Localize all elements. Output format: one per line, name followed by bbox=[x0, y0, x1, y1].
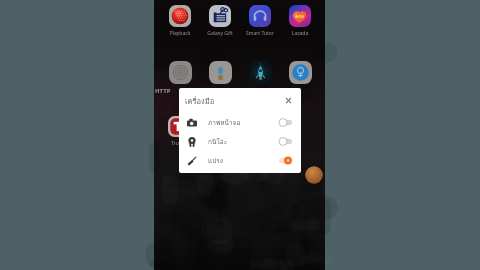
staticText: Galaxy Gift bbox=[199, 30, 241, 37]
staticText: Lazada bbox=[279, 30, 321, 37]
staticText: TrueID bbox=[158, 140, 200, 147]
button[interactable]: Playback bbox=[159, 5, 201, 37]
button[interactable]: Galaxy Gift bbox=[199, 5, 241, 37]
staticText: กนิโอะ bbox=[208, 137, 228, 147]
staticText: Playback bbox=[159, 30, 201, 37]
button[interactable]: Smart Tutor bbox=[239, 5, 281, 37]
button[interactable]: Close bbox=[283, 95, 294, 106]
button[interactable]: TrueID bbox=[168, 116, 189, 137]
button[interactable] bbox=[159, 61, 201, 94]
button[interactable] bbox=[239, 61, 281, 94]
button[interactable]: แปรง bbox=[179, 151, 301, 170]
button[interactable]: กนิโอะ bbox=[179, 132, 301, 151]
button[interactable]: Toggle on bbox=[279, 156, 292, 165]
button[interactable] bbox=[199, 61, 241, 94]
button[interactable]: Toggle off bbox=[279, 137, 292, 146]
button[interactable]: ภาพหน้าจอ bbox=[179, 113, 301, 132]
staticText: แปรง bbox=[208, 156, 223, 166]
staticText: ภาพหน้าจอ bbox=[208, 118, 241, 128]
button[interactable]: Lazada bbox=[279, 5, 321, 37]
staticText: Smart Tutor bbox=[239, 30, 281, 37]
button[interactable]: Floating tools bubble bbox=[305, 166, 323, 184]
button[interactable] bbox=[279, 61, 321, 94]
staticText: HTTP bbox=[155, 87, 171, 95]
staticText: เครื่องมือ bbox=[185, 95, 215, 107]
button[interactable]: Toggle off bbox=[279, 118, 292, 127]
